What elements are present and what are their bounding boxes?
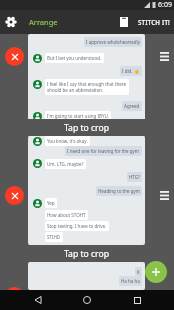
button[interactable]: K xyxy=(135,267,142,277)
button[interactable]: Arrange xyxy=(29,17,58,27)
button[interactable]: Agreed xyxy=(122,101,142,111)
staticText: Stop texting, I have to drive. xyxy=(47,223,107,229)
staticText: Ha ha ha xyxy=(121,278,140,284)
button[interactable]: Heading to the gym xyxy=(96,186,142,196)
staticText: You know, it's okay. xyxy=(47,138,88,144)
button[interactable]: How about STOHT xyxy=(45,210,88,220)
button[interactable]: Ha ha ha xyxy=(119,276,142,286)
button[interactable]: Close xyxy=(5,186,24,205)
staticText: Um, LTG, maybe? xyxy=(47,161,84,167)
staticText: How about STOHT xyxy=(47,212,86,218)
button[interactable]: I need one for leaving for the gym xyxy=(65,146,142,156)
staticText: Tap to crop xyxy=(64,248,109,260)
staticText: HTG? xyxy=(129,174,140,180)
staticText: Tap to crop xyxy=(64,122,109,134)
button[interactable]: Tap to crop xyxy=(28,119,145,136)
button[interactable]: Add xyxy=(145,261,167,283)
button[interactable]: Settings xyxy=(3,14,19,30)
staticText: I approve wholeheartedly xyxy=(86,39,140,45)
staticText: 6:09 xyxy=(158,0,172,10)
staticText: Agreed xyxy=(124,103,140,109)
button[interactable]: Reorder xyxy=(156,187,172,203)
button[interactable]: You know, it's okay. xyxy=(45,136,90,146)
button[interactable]: I did. 👍 xyxy=(120,66,142,76)
button[interactable]: But I bet you understood. xyxy=(45,53,104,63)
button[interactable]: Reorder xyxy=(156,48,172,64)
button[interactable]: Close xyxy=(5,47,24,66)
staticText: But I bet you understood. xyxy=(47,55,102,61)
staticText: STIHD xyxy=(47,234,61,240)
button[interactable]: Um, LTG, maybe? xyxy=(45,159,86,169)
staticText: Yep xyxy=(47,200,55,206)
staticText: Heading to the gym xyxy=(98,188,140,194)
button[interactable]: Tap to crop xyxy=(28,245,145,262)
button[interactable]: Screenshot card xyxy=(28,136,145,245)
button[interactable]: Close xyxy=(5,287,24,306)
button[interactable]: I feel like I say that enough that there… xyxy=(45,79,129,95)
button[interactable]: I approve wholeheartedly xyxy=(84,37,142,47)
button[interactable]: I'm going to start using IBYU. xyxy=(45,111,111,121)
button[interactable]: HTG? xyxy=(127,172,142,182)
button[interactable]: STIHD xyxy=(45,232,63,242)
button[interactable]: Yep xyxy=(45,198,57,208)
button[interactable]: Screenshot card xyxy=(28,34,145,137)
button[interactable]: Stop texting, I have to drive. xyxy=(45,221,109,231)
button[interactable]: Recents xyxy=(125,290,149,310)
button[interactable]: STITCH IT! xyxy=(138,18,170,26)
staticText: I did. 👍 xyxy=(122,68,140,74)
staticText: K xyxy=(137,269,140,275)
staticText: I'm going to start using IBYU. xyxy=(47,113,109,119)
staticText: I feel like I say that enough that there… xyxy=(47,81,127,93)
button[interactable]: Back xyxy=(26,290,50,310)
button[interactable]: Delete xyxy=(116,14,132,30)
button[interactable]: Home xyxy=(75,290,99,310)
button[interactable]: Screenshot card xyxy=(28,262,145,290)
staticText: I need one for leaving for the gym xyxy=(67,148,140,154)
